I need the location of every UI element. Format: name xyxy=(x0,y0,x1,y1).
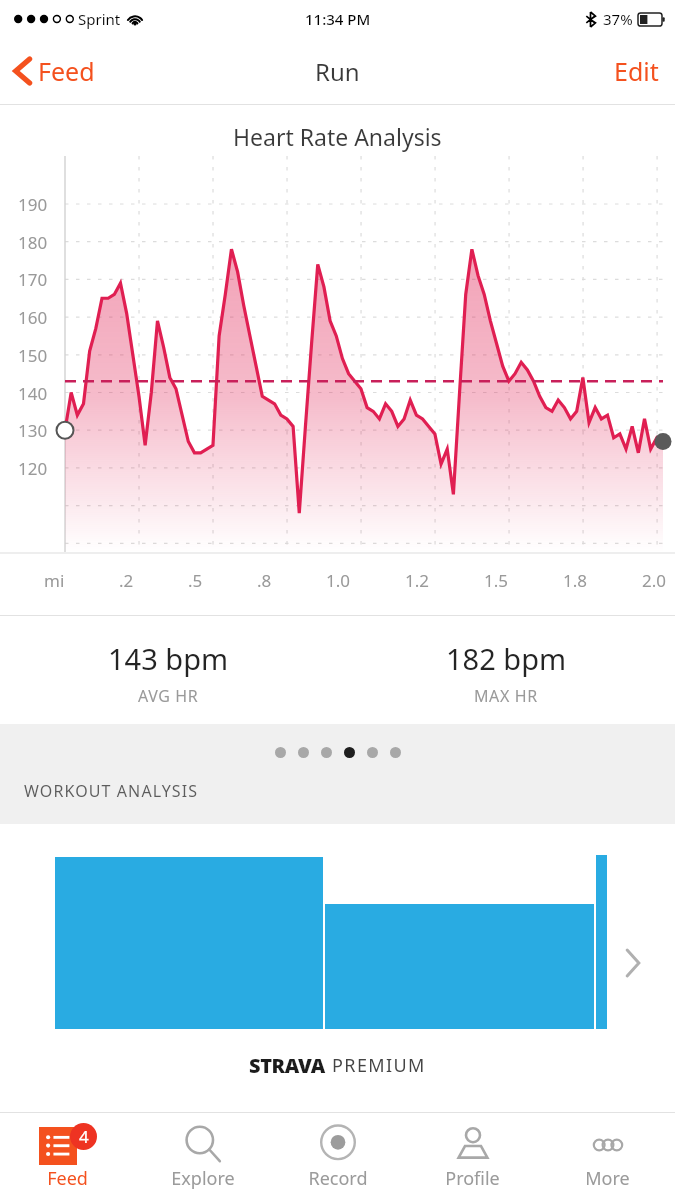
staticText: 150 xyxy=(18,344,48,367)
staticText: 2.0 xyxy=(642,569,667,592)
staticText: Edit xyxy=(614,54,659,88)
staticText: 1.5 xyxy=(484,569,509,592)
staticText: 1.0 xyxy=(326,569,351,592)
other: Record xyxy=(317,1123,359,1165)
button[interactable]: Edit xyxy=(598,54,675,88)
button[interactable] xyxy=(275,747,286,758)
other: Explore xyxy=(183,1124,223,1164)
staticText: .5 xyxy=(188,569,203,592)
staticText: 11:34 PM xyxy=(305,9,371,29)
button[interactable] xyxy=(321,747,332,758)
staticText: AVG HR xyxy=(138,685,199,707)
button[interactable] xyxy=(344,747,355,758)
staticText: Heart Rate Analysis xyxy=(233,121,442,152)
staticText: Feed xyxy=(47,1166,88,1191)
button[interactable]: Explore xyxy=(135,1113,270,1200)
staticText: 160 xyxy=(18,306,48,329)
staticText: STRAVA xyxy=(249,1052,325,1079)
staticText: Feed xyxy=(38,54,95,88)
staticText: 37% xyxy=(603,9,633,29)
staticText: MAX HR xyxy=(474,685,538,707)
staticText: .2 xyxy=(119,569,134,592)
staticText: Run xyxy=(315,55,360,88)
staticText: 130 xyxy=(18,419,48,442)
other: Profile xyxy=(453,1124,493,1164)
staticText: Sprint xyxy=(78,9,121,29)
staticText: 120 xyxy=(18,457,48,480)
other: More xyxy=(588,1134,628,1154)
staticText: .8 xyxy=(257,569,272,592)
staticText: 182 bpm xyxy=(446,639,567,678)
staticText: 180 xyxy=(18,231,48,254)
staticText: 143 bpm xyxy=(108,639,229,678)
staticText: 1.8 xyxy=(563,569,588,592)
other: Feed, 4 new xyxy=(39,1123,97,1165)
button[interactable]: Feed xyxy=(0,54,105,88)
staticText: 190 xyxy=(18,193,48,216)
staticText: 1.2 xyxy=(405,569,430,592)
staticText: Record xyxy=(308,1166,368,1191)
button[interactable]: Record xyxy=(270,1113,405,1200)
staticText: 170 xyxy=(18,268,48,291)
staticText: PREMIUM xyxy=(332,1053,426,1078)
button[interactable]: Profile xyxy=(405,1113,540,1200)
staticText: Explore xyxy=(171,1166,235,1191)
staticText: Profile xyxy=(445,1166,500,1191)
staticText: mi xyxy=(44,569,65,592)
button[interactable] xyxy=(298,747,309,758)
staticText: 140 xyxy=(18,382,48,405)
button[interactable] xyxy=(390,747,401,758)
staticText: 4 xyxy=(79,1125,89,1148)
staticText: WORKOUT ANALYSIS xyxy=(24,780,199,802)
button[interactable] xyxy=(367,747,378,758)
staticText: More xyxy=(585,1166,630,1191)
button[interactable]: More xyxy=(540,1113,675,1200)
button[interactable]: Feed, 4 new xyxy=(0,1113,135,1200)
